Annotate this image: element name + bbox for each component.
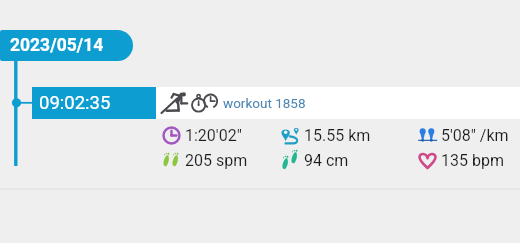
staticText: 205 spm (185, 151, 248, 170)
staticText: 135 bpm (441, 151, 504, 170)
button[interactable]: 09:02:35 (32, 87, 156, 119)
button[interactable]: 94 cm (278, 148, 415, 173)
staticText: 2023/05/14 (10, 35, 104, 56)
button[interactable]: 1:20'02" (159, 123, 278, 148)
staticText: 15.55 km (304, 126, 371, 145)
button[interactable]: 5'08" /km (415, 123, 515, 148)
button[interactable]: 2023/05/14 (0, 30, 133, 61)
button[interactable]: 15.55 km (278, 123, 415, 148)
staticText: workout 1858 (223, 95, 306, 111)
staticText: 94 cm (304, 151, 349, 170)
staticText: 09:02:35 (39, 92, 111, 114)
button[interactable]: Running workout (156, 87, 520, 119)
button[interactable]: 135 bpm (415, 148, 515, 173)
staticText: 1:20'02" (185, 126, 242, 145)
staticText: 5'08" /km (441, 126, 509, 145)
other: Running workout (161, 91, 188, 113)
button[interactable]: 205 spm (159, 148, 278, 173)
